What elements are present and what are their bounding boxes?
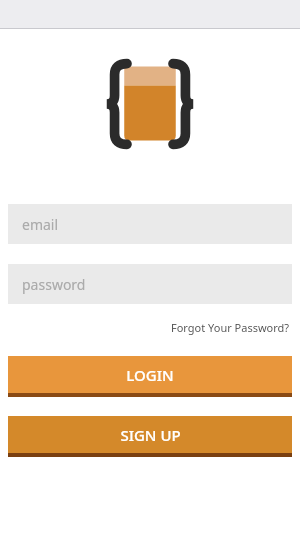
- button[interactable]: LOGIN: [8, 356, 292, 397]
- button[interactable]: password: [8, 264, 292, 304]
- other: App logo: [104, 62, 196, 146]
- button[interactable]: SIGN UP: [8, 416, 292, 457]
- button[interactable]: Forgot Your Password?: [169, 318, 292, 337]
- staticText: Forgot Your Password?: [171, 320, 290, 335]
- staticText: SIGN UP: [120, 425, 181, 445]
- staticText: LOGIN: [126, 365, 174, 385]
- button[interactable]: email: [8, 204, 292, 244]
- staticText: password: [22, 275, 86, 294]
- staticText: email: [22, 215, 59, 234]
